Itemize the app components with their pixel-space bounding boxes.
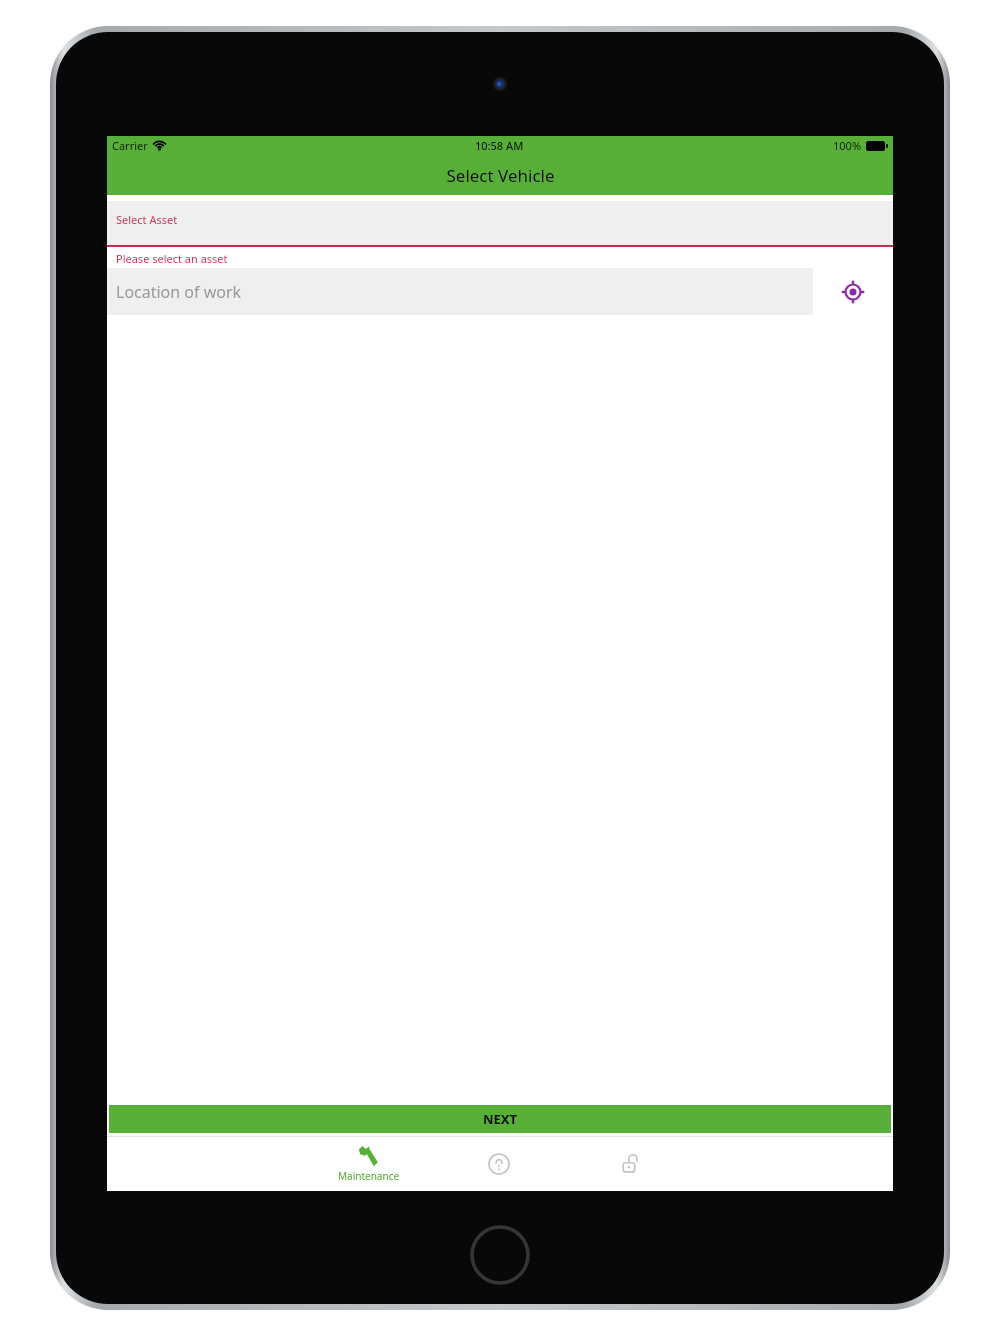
staticText: Select Asset — [116, 212, 178, 227]
button[interactable]: Lock — [564, 1137, 694, 1191]
button[interactable]: Maintenance — [304, 1137, 434, 1191]
staticText: Location of work — [116, 281, 242, 303]
staticText: NEXT — [483, 1110, 518, 1128]
button[interactable]: Select Asset — [107, 201, 893, 247]
button[interactable]: Help — [434, 1137, 564, 1191]
staticText: Maintenance — [338, 1169, 400, 1183]
staticText: Select Vehicle — [446, 164, 555, 187]
button[interactable]: NEXT — [109, 1105, 891, 1133]
staticText: 10:58 AM — [475, 138, 524, 153]
staticText: 100% — [833, 138, 862, 153]
button[interactable]: Use current location — [813, 268, 893, 315]
button[interactable]: Location of work — [107, 268, 813, 315]
staticText: Please select an asset — [116, 251, 228, 265]
staticText: Carrier — [112, 138, 148, 153]
